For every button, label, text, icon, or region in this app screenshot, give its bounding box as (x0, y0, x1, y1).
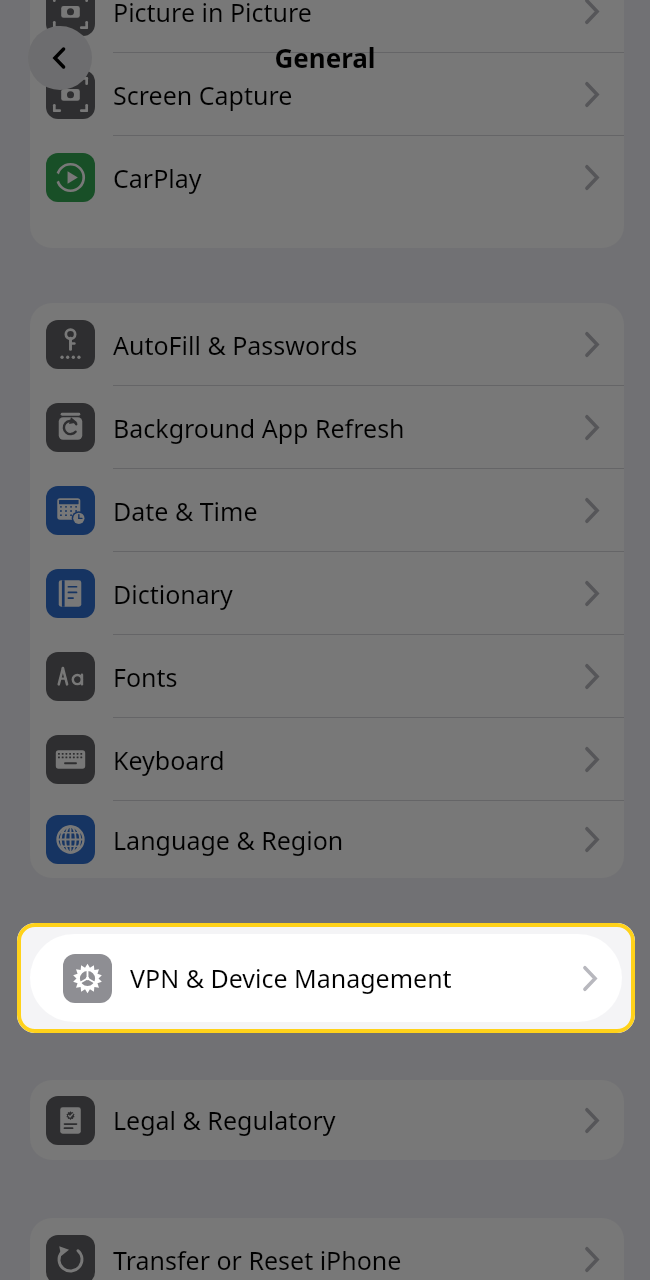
button[interactable]: VPN & Device Management (30, 934, 622, 1022)
button[interactable]: Dictionary (30, 552, 624, 635)
staticText: Language & Region (113, 823, 584, 857)
button[interactable]: Back (28, 26, 92, 90)
button[interactable]: Language & Region (30, 801, 624, 878)
button[interactable]: Transfer or Reset iPhone (30, 1218, 624, 1280)
staticText: Keyboard (113, 743, 584, 777)
button[interactable]: AutoFill & Passwords (30, 303, 624, 386)
button[interactable]: Date & Time (30, 469, 624, 552)
staticText: CarPlay (113, 161, 584, 195)
button[interactable]: CarPlay (30, 136, 624, 219)
staticText: VPN & Device Management (130, 961, 582, 995)
staticText: Picture in Picture (113, 0, 584, 29)
button[interactable]: Background App Refresh (30, 386, 624, 469)
staticText: AutoFill & Passwords (113, 328, 584, 362)
button[interactable]: Fonts (30, 635, 624, 718)
staticText: Date & Time (113, 494, 584, 528)
button[interactable]: VPN & Device Management (30, 934, 624, 1022)
button[interactable]: Keyboard (30, 718, 624, 801)
button[interactable]: Picture in Picture (30, 0, 624, 53)
staticText: Fonts (113, 660, 584, 694)
staticText: VPN & Device Management (113, 961, 584, 995)
staticText: Dictionary (113, 577, 584, 611)
staticText: Transfer or Reset iPhone (113, 1243, 584, 1277)
staticText: Screen Capture (113, 78, 584, 112)
staticText: Legal & Regulatory (113, 1103, 584, 1137)
button[interactable]: Legal & Regulatory (30, 1080, 624, 1160)
staticText: General (0, 40, 650, 75)
staticText: Background App Refresh (113, 411, 584, 445)
button[interactable]: Screen Capture (30, 53, 624, 136)
button[interactable]: VPN & Device Management (17, 923, 635, 1033)
